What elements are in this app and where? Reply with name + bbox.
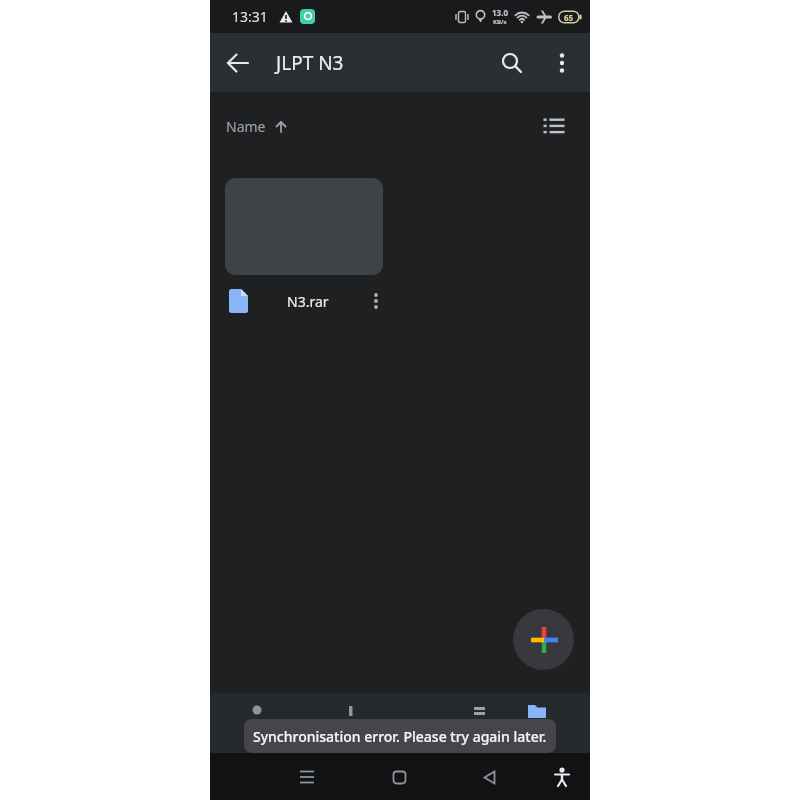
button[interactable] bbox=[291, 761, 323, 793]
button[interactable] bbox=[488, 39, 536, 87]
staticText: 65 bbox=[564, 12, 574, 23]
button[interactable] bbox=[473, 761, 505, 793]
button[interactable]: N3.rar bbox=[225, 178, 383, 314]
button[interactable] bbox=[513, 609, 574, 670]
button[interactable] bbox=[369, 289, 383, 313]
button[interactable] bbox=[383, 761, 415, 793]
staticText: KB/s bbox=[493, 18, 507, 26]
staticText: JLPT N3 bbox=[276, 50, 344, 76]
button[interactable] bbox=[210, 35, 266, 91]
staticText: Synchronisation error. Please try again … bbox=[253, 727, 547, 746]
button[interactable] bbox=[536, 37, 588, 89]
staticText: Name bbox=[226, 117, 266, 136]
button[interactable]: Name bbox=[226, 117, 288, 136]
staticText: 13:31 bbox=[232, 7, 268, 26]
staticText: N3.rar bbox=[287, 292, 329, 311]
button[interactable] bbox=[546, 761, 578, 793]
button[interactable] bbox=[534, 106, 574, 146]
staticText: 13.0 bbox=[492, 7, 508, 18]
